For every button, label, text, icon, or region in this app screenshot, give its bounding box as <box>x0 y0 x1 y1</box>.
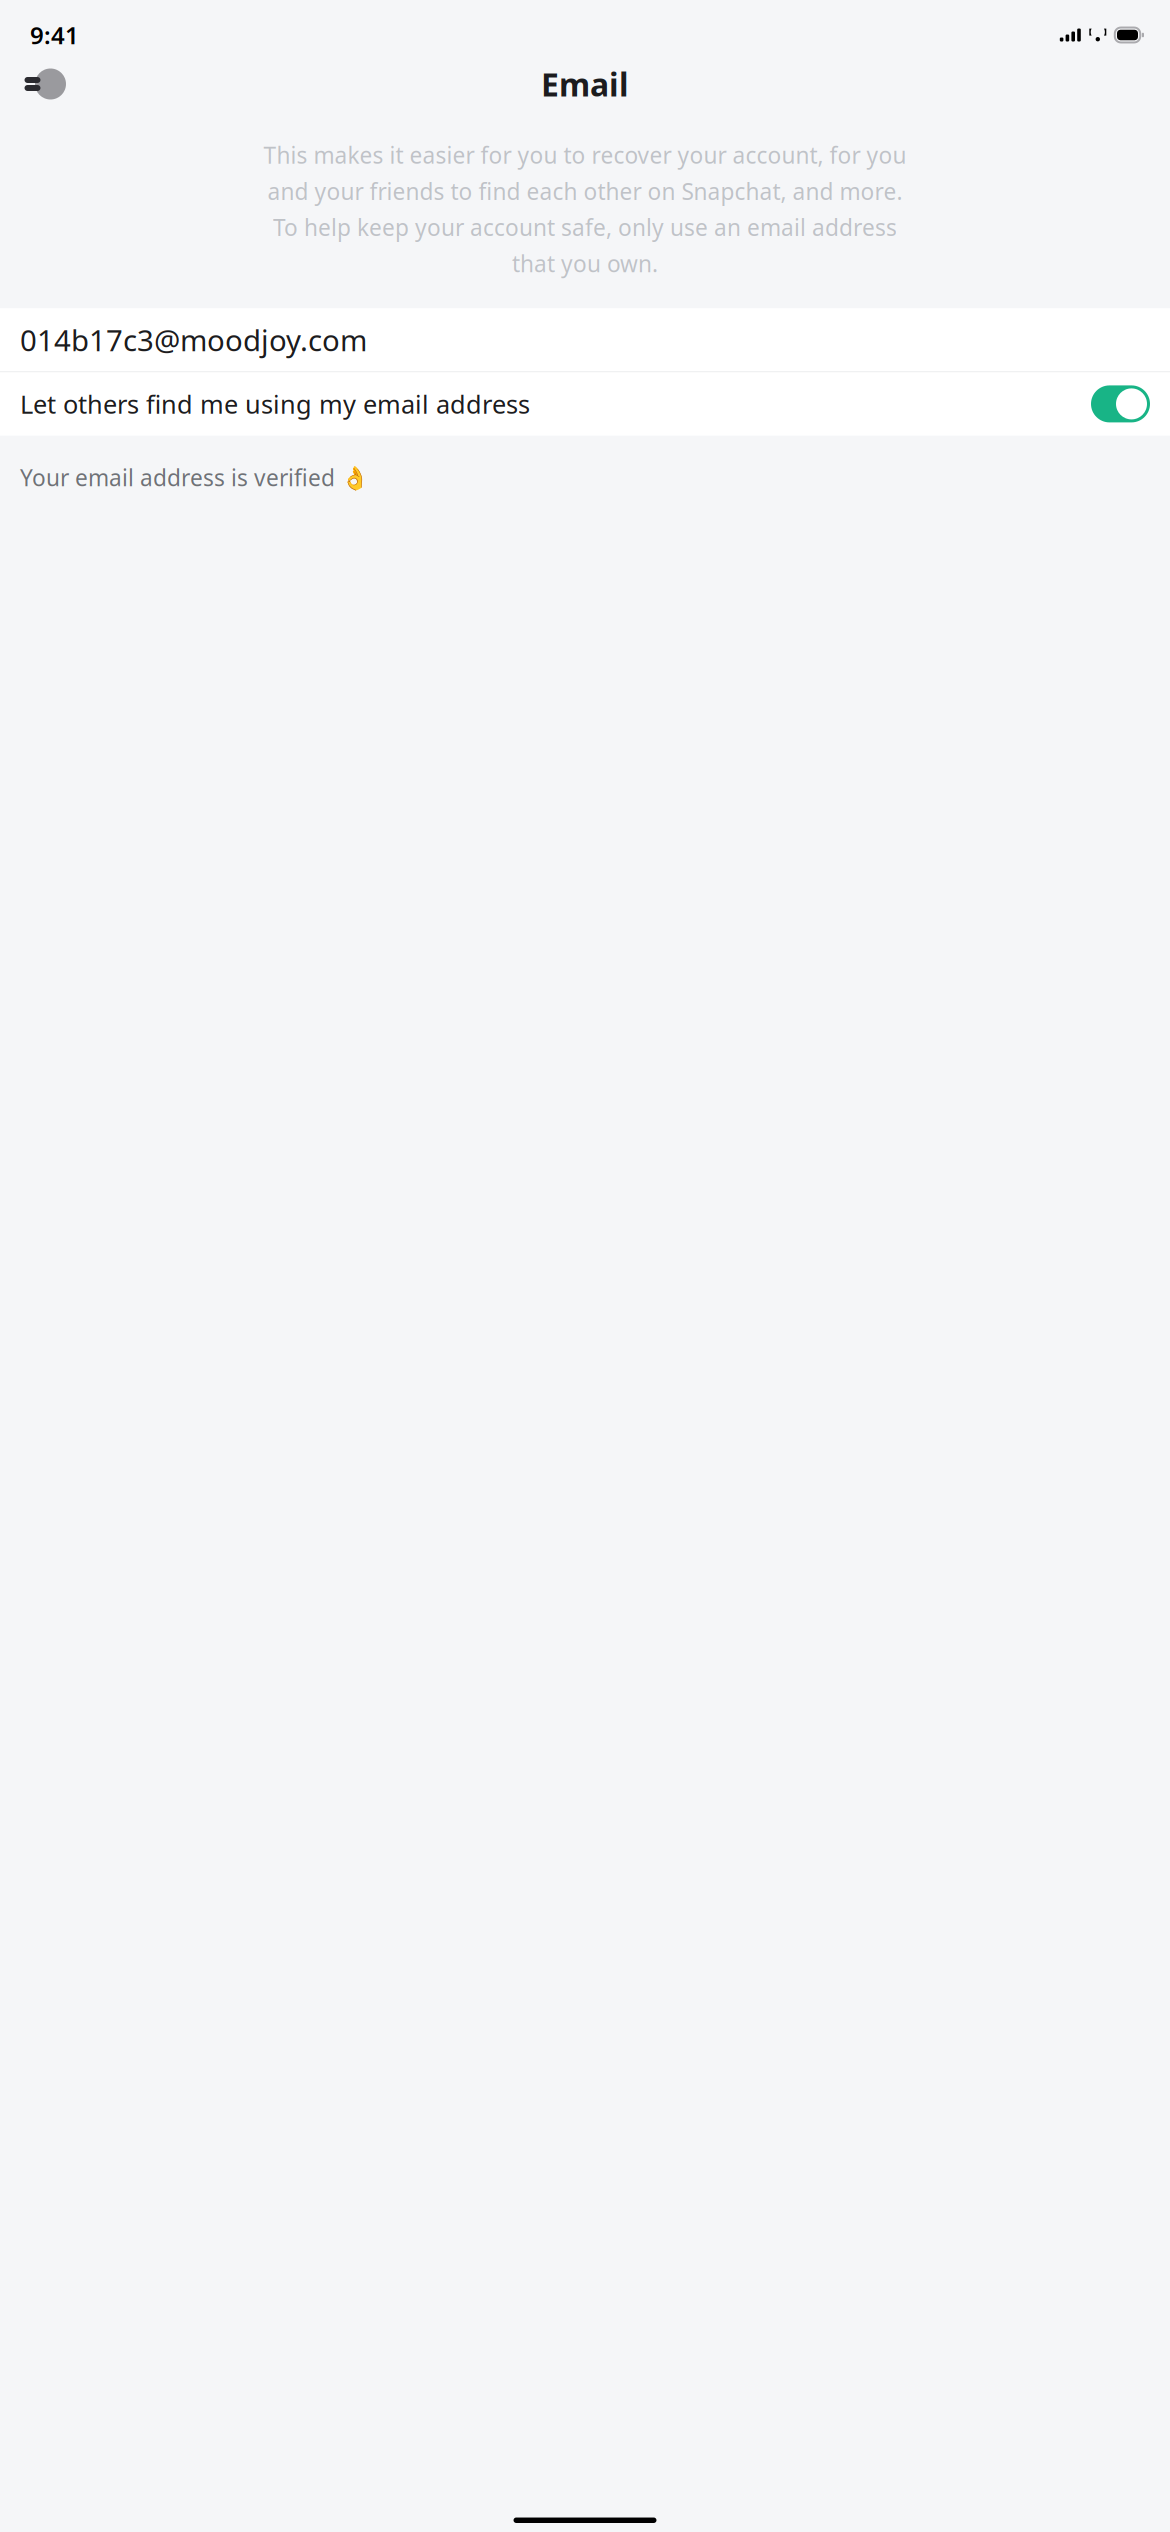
staticText: 014b17c3@moodjoy.com <box>20 320 367 359</box>
staticText: Email <box>541 63 629 105</box>
staticText: Let others find me using my email addres… <box>20 387 530 421</box>
staticText: that you own. <box>512 248 658 278</box>
button[interactable]: 014b17c3@moodjoy.com <box>0 308 1170 371</box>
staticText: This makes it easier for you to recover … <box>263 140 906 170</box>
staticText: Your email address is verified 👌 <box>20 462 369 492</box>
button[interactable]: Let others find me using my email addres… <box>0 372 1170 435</box>
staticText: 9:41 <box>30 19 79 51</box>
staticText: To help keep your account safe, only use… <box>273 212 897 242</box>
staticText: and your friends to find each other on S… <box>267 176 902 206</box>
button[interactable]: Back <box>0 60 74 108</box>
